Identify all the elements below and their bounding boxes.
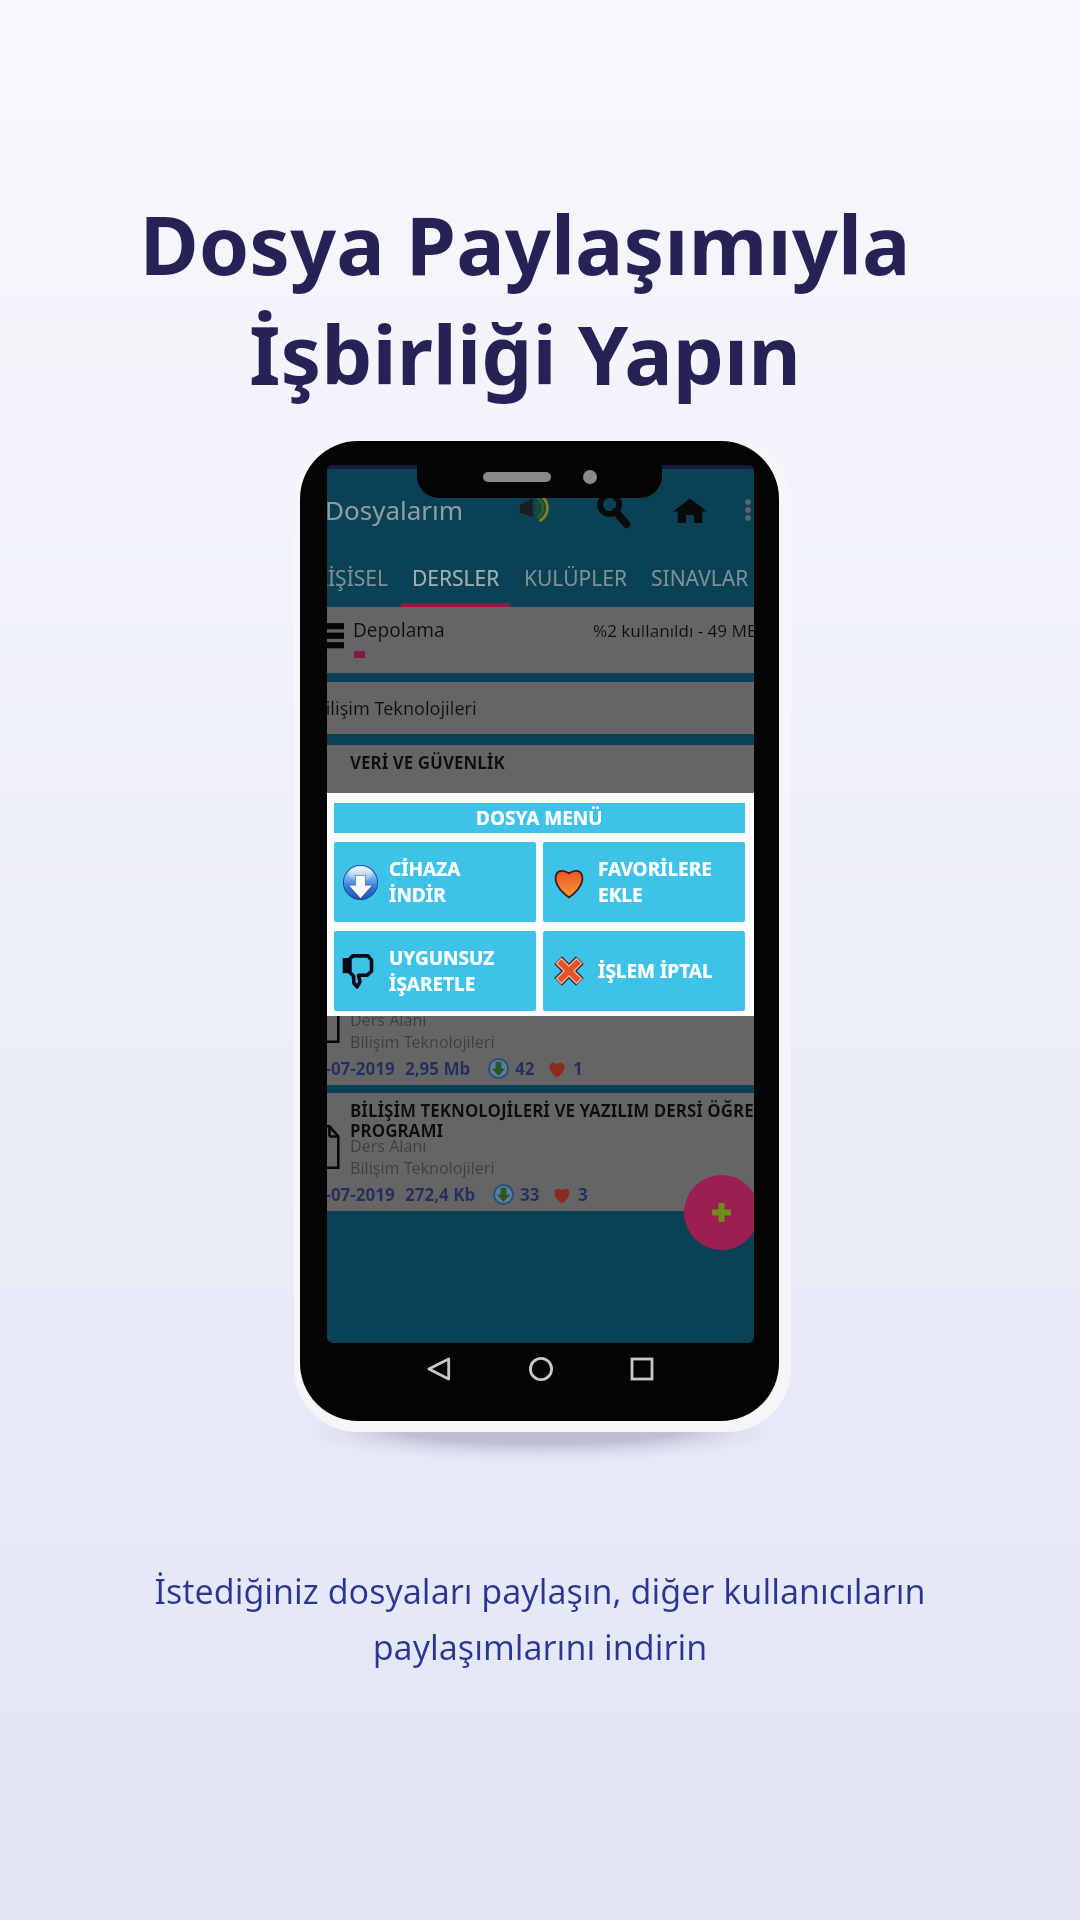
staticText: İstediğiniz dosyaları paylaşın, diğer ku… [154, 1568, 926, 1670]
staticText: Ders Alanı [350, 1009, 427, 1031]
staticText: VERİ VE GÜVENLİK [350, 751, 505, 774]
staticText: CİHAZA İNDİR [389, 856, 461, 908]
staticText: Dosyalarım [327, 492, 464, 527]
button[interactable]: BİLİŞİM TEKNOLOJİLERİ VE YAZILIM DERSİ Ö… [327, 1093, 754, 1211]
staticText: KULÜPLER [524, 564, 627, 593]
staticText: İŞLEM İPTAL [598, 958, 713, 984]
button[interactable]: CİHAZA İNDİR [334, 842, 536, 922]
staticText: DERSLER [412, 564, 500, 593]
staticText: KİŞİSEL [327, 564, 388, 593]
button[interactable]: FAVORİLERE EKLE [543, 842, 745, 922]
button[interactable]: Search [590, 487, 636, 533]
staticText: Bilişim Teknolojileri [350, 1031, 495, 1053]
staticText: 42 [515, 1057, 535, 1080]
button[interactable]: Recents [622, 1349, 662, 1389]
staticText: Depolama [353, 617, 445, 643]
staticText: 33 [520, 1183, 540, 1206]
button[interactable]: Add file [684, 1175, 754, 1250]
staticText: 21-07-2019 [327, 1183, 395, 1206]
staticText: 1 [573, 1057, 583, 1080]
button[interactable]: Bilişim Teknolojileri [327, 682, 754, 734]
button[interactable]: VERİ VE GÜVENLİK [327, 745, 754, 1085]
button[interactable]: Depolama [327, 607, 754, 673]
button[interactable]: DOSYA MENÜ [334, 803, 745, 833]
button[interactable]: SINAVLAR [639, 553, 754, 603]
button[interactable]: Home [667, 487, 713, 533]
button[interactable]: More options [736, 498, 754, 522]
button[interactable]: DERSLER [401, 553, 510, 603]
staticText: UYGUNSUZ İŞARETLE [389, 945, 495, 997]
staticText: 3 [578, 1183, 588, 1206]
staticText: SINAVLAR [651, 564, 749, 593]
staticText: 21-07-2019 [327, 1057, 395, 1080]
button[interactable]: Announcements [516, 487, 562, 533]
staticText: BİLİŞİM TEKNOLOJİLERİ VE YAZILIM DERSİ Ö… [350, 1099, 754, 1142]
staticText: Ders Alanı [350, 1135, 427, 1157]
staticText: DOSYA MENÜ [476, 805, 603, 831]
button[interactable]: Home [521, 1349, 561, 1389]
staticText: Bilişim Teknolojileri [350, 1157, 495, 1179]
staticText: FAVORİLERE EKLE [598, 856, 712, 908]
staticText: 272,4 Kb [405, 1183, 476, 1206]
staticText: Dosya Paylaşımıyla [139, 188, 911, 298]
staticText: Bilişim Teknolojileri [327, 696, 477, 721]
button[interactable]: KULÜPLER [512, 553, 639, 603]
staticText: 2,95 Mb [405, 1057, 471, 1080]
button[interactable]: UYGUNSUZ İŞARETLE [334, 931, 536, 1011]
staticText: %2 kullanıldı - 49 MB boş [593, 619, 754, 642]
button[interactable]: İŞLEM İPTAL [543, 931, 745, 1011]
staticText: İşbirliği Yapın [249, 298, 801, 408]
button[interactable]: Back [419, 1349, 459, 1389]
button[interactable]: KİŞİSEL [327, 553, 396, 603]
